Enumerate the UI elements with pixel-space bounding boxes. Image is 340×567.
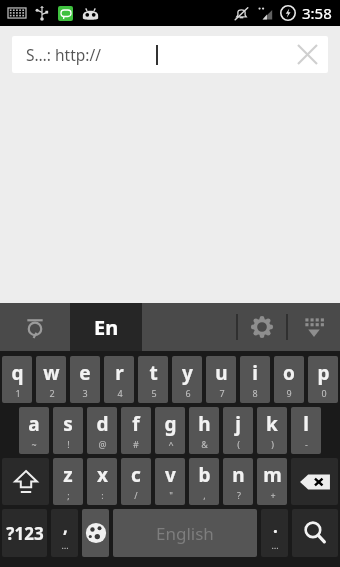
staticText: -: [305, 438, 308, 450]
staticText: m: [263, 462, 282, 488]
button[interactable]: b: [189, 458, 219, 505]
staticText: g: [164, 411, 177, 437]
staticText: 2: [49, 387, 55, 399]
button[interactable]: r: [104, 356, 134, 403]
staticText: (: [237, 438, 240, 450]
staticText: s: [63, 411, 73, 437]
staticText: c: [131, 462, 141, 488]
button[interactable]: p: [308, 356, 338, 403]
staticText: e: [79, 360, 91, 386]
staticText: 9: [286, 387, 292, 399]
button[interactable]: x: [87, 458, 117, 505]
staticText: English: [156, 522, 214, 545]
staticText: y: [182, 360, 193, 386]
staticText: b: [198, 462, 211, 488]
button[interactable]: e: [70, 356, 100, 403]
staticText: ;: [67, 489, 70, 501]
button[interactable]: Clear text: [288, 36, 326, 73]
button[interactable]: q: [2, 356, 32, 403]
staticText: k: [266, 411, 278, 437]
staticText: v: [165, 462, 176, 488]
button[interactable]: c: [121, 458, 151, 505]
button[interactable]: k: [257, 407, 287, 454]
staticText: x: [97, 462, 108, 488]
staticText: a: [28, 411, 40, 437]
staticText: j: [235, 411, 241, 437]
button[interactable]: t: [138, 356, 168, 403]
staticText: ?: [237, 489, 241, 501]
staticText: !: [67, 438, 70, 450]
staticText: 8: [252, 387, 258, 399]
staticText: q: [11, 360, 24, 386]
staticText: +: [270, 489, 276, 501]
staticText: r: [115, 360, 124, 386]
staticText: u: [215, 360, 228, 386]
button[interactable]: o: [274, 356, 304, 403]
button[interactable]: n: [223, 458, 253, 505]
staticText: &: [201, 438, 208, 450]
staticText: .: [273, 515, 278, 538]
button[interactable]: v: [155, 458, 185, 505]
staticText: 3:58: [302, 3, 332, 23]
button[interactable]: d: [87, 407, 117, 454]
button[interactable]: a: [19, 407, 49, 454]
staticText: t: [149, 360, 158, 386]
staticText: z: [63, 462, 73, 488]
button[interactable]: i: [240, 356, 270, 403]
staticText: ?123: [6, 522, 44, 545]
staticText: n: [232, 462, 245, 488]
button[interactable]: f: [121, 407, 151, 454]
staticText: 3: [82, 387, 88, 399]
staticText: :: [101, 489, 104, 501]
staticText: ,: [63, 515, 68, 538]
staticText: …: [61, 539, 69, 551]
button[interactable]: u: [206, 356, 236, 403]
staticText: p: [317, 360, 330, 386]
staticText: w: [43, 360, 60, 386]
button[interactable]: g: [155, 407, 185, 454]
staticText: @: [98, 438, 107, 450]
staticText: i: [252, 360, 258, 386]
button[interactable]: z: [53, 458, 83, 505]
button[interactable]: .: [261, 509, 288, 557]
staticText: En: [94, 314, 119, 341]
button[interactable]: Search: [292, 509, 338, 557]
button[interactable]: m: [257, 458, 287, 505]
staticText: 6: [185, 387, 191, 399]
staticText: f: [132, 411, 140, 437]
button[interactable]: S…: http://youtu.be/8-hHLffIE4w: [12, 36, 328, 73]
button[interactable]: w: [36, 356, 66, 403]
staticText: S…: http://youtu.be/8-hHLffIE4w: [26, 44, 156, 65]
button[interactable]: Settings: [238, 303, 286, 351]
staticText: 7: [219, 387, 225, 399]
button[interactable]: Shift: [2, 458, 49, 505]
button[interactable]: h: [189, 407, 219, 454]
staticText: l: [303, 411, 309, 437]
staticText: 4: [117, 387, 123, 399]
button[interactable]: ,: [51, 509, 78, 557]
button[interactable]: Voice input: [0, 303, 70, 351]
button[interactable]: Backspace: [291, 458, 338, 505]
button[interactable]: y: [172, 356, 202, 403]
button[interactable]: Hide keyboard: [288, 303, 340, 351]
staticText: h: [198, 411, 211, 437]
staticText: ,: [203, 489, 206, 501]
staticText: ^: [168, 438, 174, 450]
button[interactable]: l: [291, 407, 321, 454]
button[interactable]: Change language: [82, 509, 109, 557]
staticText: 1: [15, 387, 21, 399]
button[interactable]: ?123: [2, 509, 47, 557]
staticText: ": [169, 489, 173, 501]
button[interactable]: English: [113, 509, 257, 557]
staticText: #: [133, 438, 139, 450]
staticText: ~: [31, 438, 37, 450]
staticText: d: [96, 411, 109, 437]
staticText: /: [134, 489, 138, 501]
staticText: 5: [151, 387, 157, 399]
staticText: ): [271, 438, 274, 450]
button[interactable]: s: [53, 407, 83, 454]
button[interactable]: j: [223, 407, 253, 454]
button[interactable]: En: [70, 303, 142, 351]
staticText: o: [283, 360, 295, 386]
staticText: …: [271, 539, 279, 551]
